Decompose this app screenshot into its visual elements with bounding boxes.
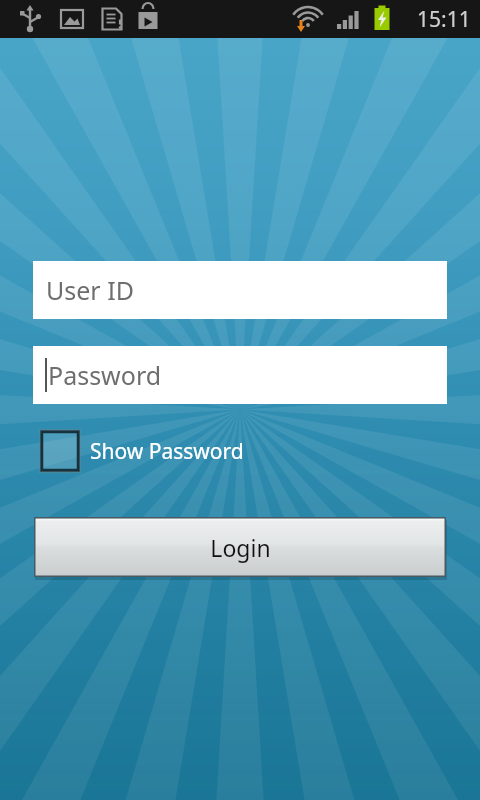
- other: Show password checkbox: [40, 430, 80, 472]
- staticText: Password: [48, 358, 162, 392]
- button[interactable]: User ID: [33, 261, 447, 319]
- staticText: Login: [210, 532, 271, 563]
- staticText: User ID: [46, 273, 134, 307]
- button[interactable]: Login: [34, 517, 446, 577]
- button[interactable]: Show password checkbox: [40, 428, 244, 474]
- staticText: 15:11: [417, 5, 471, 34]
- button[interactable]: Password: [33, 346, 447, 404]
- staticText: Show Password: [90, 437, 244, 466]
